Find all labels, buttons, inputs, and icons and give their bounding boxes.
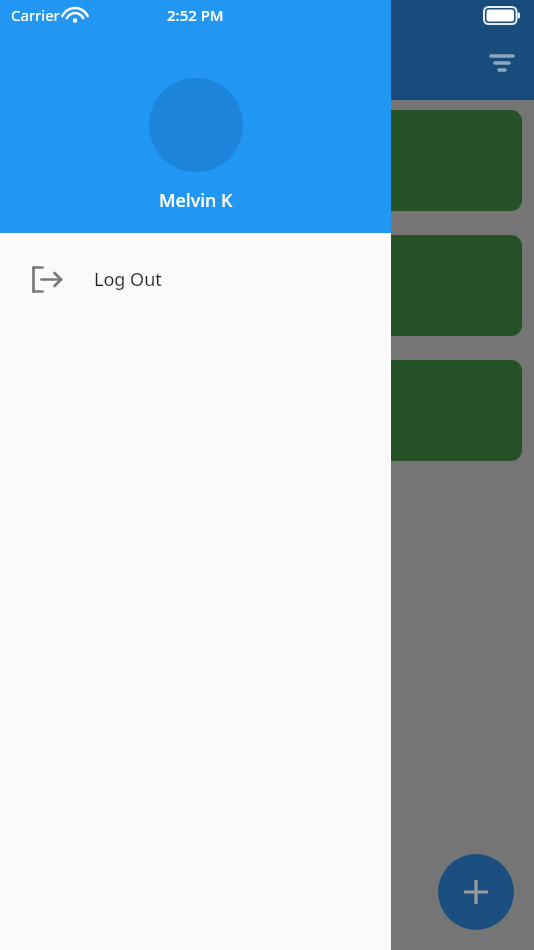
staticText: Melvin K: [159, 188, 233, 213]
button[interactable]: 760: [12, 360, 522, 461]
staticText: 2:52 PM: [167, 5, 224, 25]
staticText: 980: [28, 273, 61, 299]
button[interactable]: 980: [12, 235, 522, 336]
button[interactable]: Add: [438, 854, 514, 930]
button[interactable]: Log Out: [0, 233, 391, 326]
staticText: Log Out: [94, 267, 162, 292]
staticText: Carrier: [11, 5, 60, 25]
button[interactable]: 1,200: [12, 110, 522, 211]
button[interactable]: Filter: [483, 44, 521, 82]
